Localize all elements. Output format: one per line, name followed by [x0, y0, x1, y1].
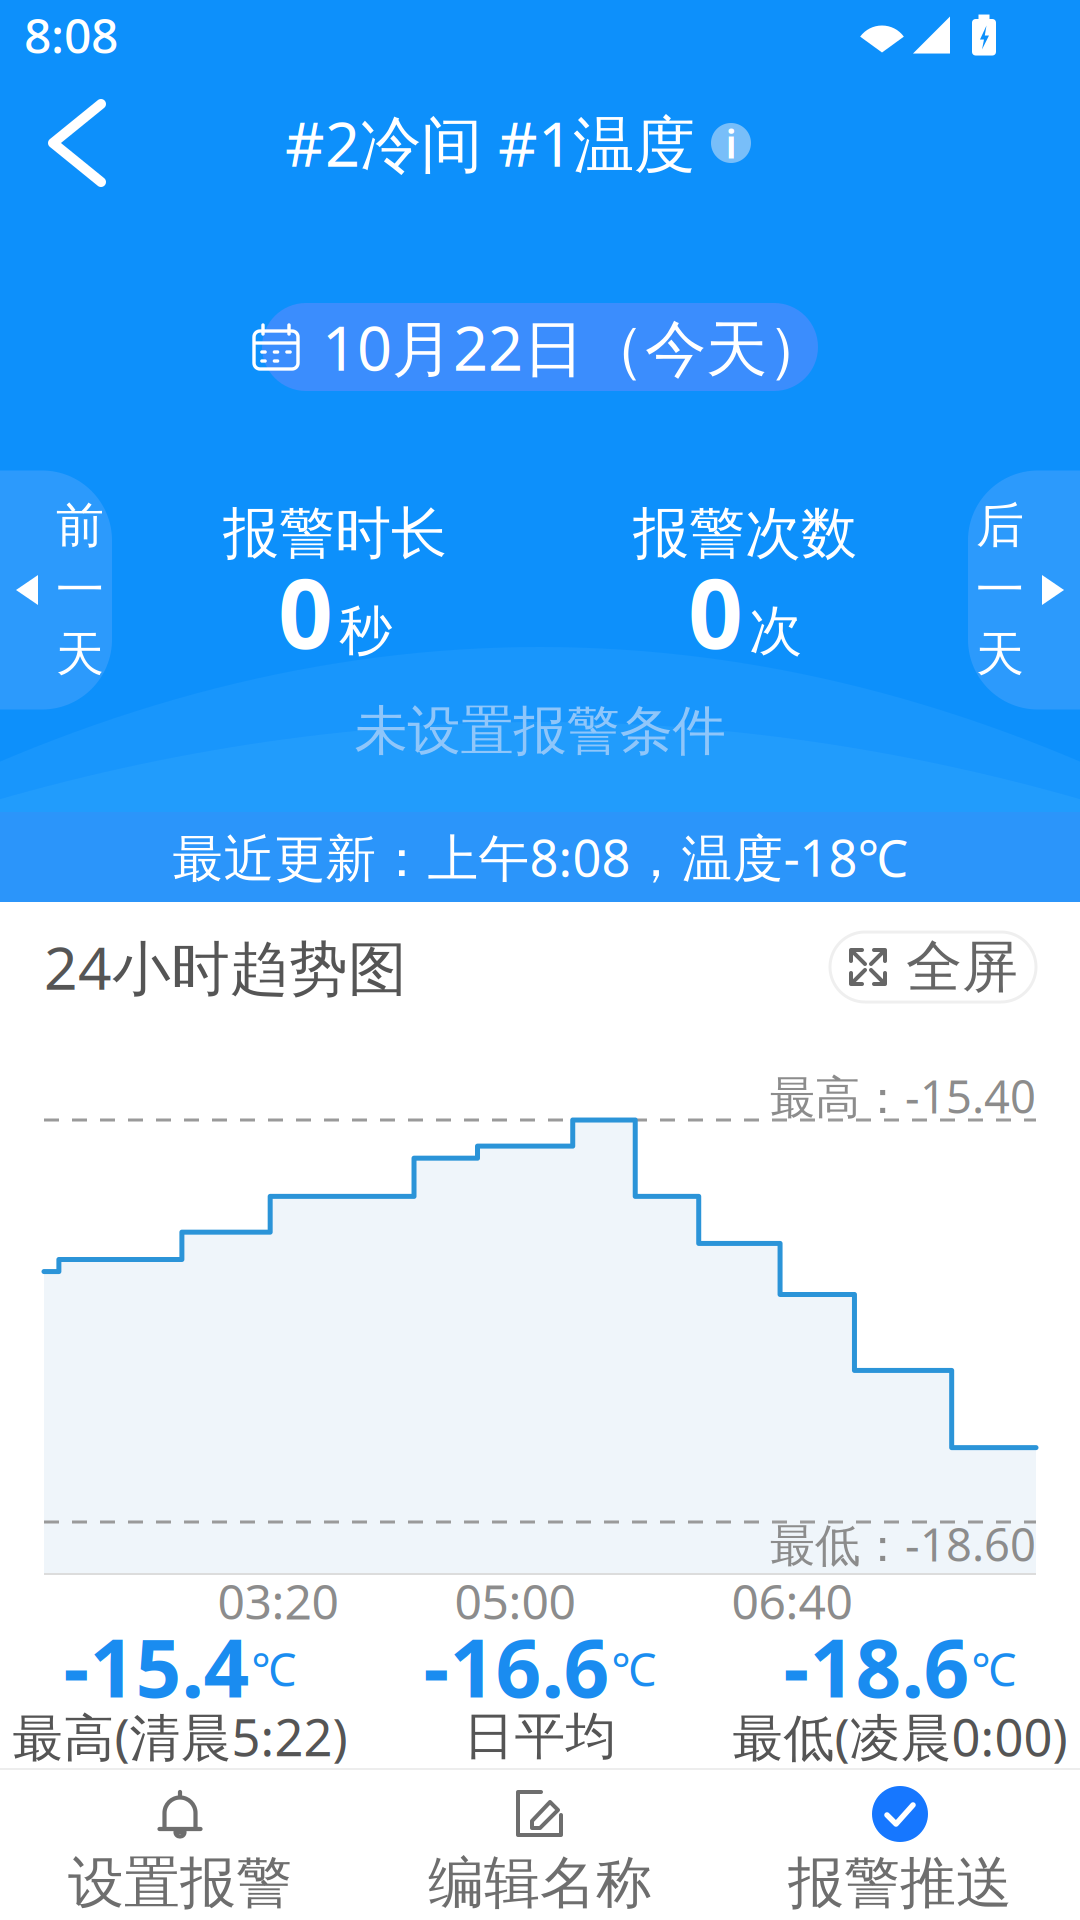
button[interactable]: 报警推送: [720, 1770, 1080, 1920]
staticText: ℃: [251, 1644, 296, 1693]
staticText: 报警次数: [633, 505, 857, 562]
staticText: 天: [56, 630, 104, 679]
staticText: 最低(凌晨0:00): [732, 1709, 1067, 1764]
staticText: 最近更新：上午8:08，温度-18℃: [172, 829, 907, 885]
staticText: i: [725, 121, 736, 165]
button[interactable]: 设置报警: [0, 1770, 360, 1920]
button[interactable]: 后一天: [968, 458, 1080, 709]
staticText: #2冷间 #1温度: [285, 110, 695, 176]
staticText: 一: [56, 566, 104, 614]
staticText: ℃: [611, 1644, 656, 1693]
staticText: 最高(清晨5:22): [12, 1709, 347, 1764]
staticText: 10月22日（今天）: [322, 314, 828, 380]
staticText: 06:40: [731, 1575, 852, 1627]
staticText: -16.6: [423, 1623, 609, 1710]
button[interactable]: 全屏: [830, 932, 1036, 1002]
staticText: 设置报警: [68, 1855, 292, 1911]
staticText: 最低：-18.60: [770, 1519, 1036, 1569]
staticText: 最高：-15.40: [770, 1071, 1036, 1121]
staticText: 编辑名称: [428, 1855, 652, 1911]
staticText: 天: [976, 630, 1024, 679]
button[interactable]: 编辑名称: [360, 1770, 720, 1920]
button[interactable]: 返回: [0, 78, 142, 208]
staticText: 全屏: [906, 939, 1018, 995]
staticText: 0: [278, 559, 333, 664]
staticText: 后: [976, 501, 1024, 550]
staticText: -15.4: [63, 1623, 249, 1710]
staticText: 0: [688, 559, 743, 664]
button[interactable]: 前一天: [0, 458, 112, 709]
staticText: 次: [749, 604, 802, 658]
staticText: -18.6: [783, 1623, 969, 1710]
staticText: 未设置报警条件: [354, 704, 725, 758]
staticText: 8:08: [24, 9, 118, 61]
staticText: 前: [56, 501, 104, 550]
staticText: 05:00: [454, 1575, 575, 1627]
staticText: 日平均: [463, 1711, 616, 1762]
staticText: 一: [976, 566, 1024, 614]
button[interactable]: 10月22日（今天）: [262, 303, 818, 391]
staticText: 24小时趋势图: [44, 935, 407, 999]
staticText: 报警推送: [788, 1855, 1012, 1911]
staticText: ℃: [971, 1644, 1016, 1693]
staticText: 03:20: [217, 1575, 338, 1627]
staticText: 秒: [339, 604, 392, 658]
staticText: 报警时长: [223, 505, 447, 562]
